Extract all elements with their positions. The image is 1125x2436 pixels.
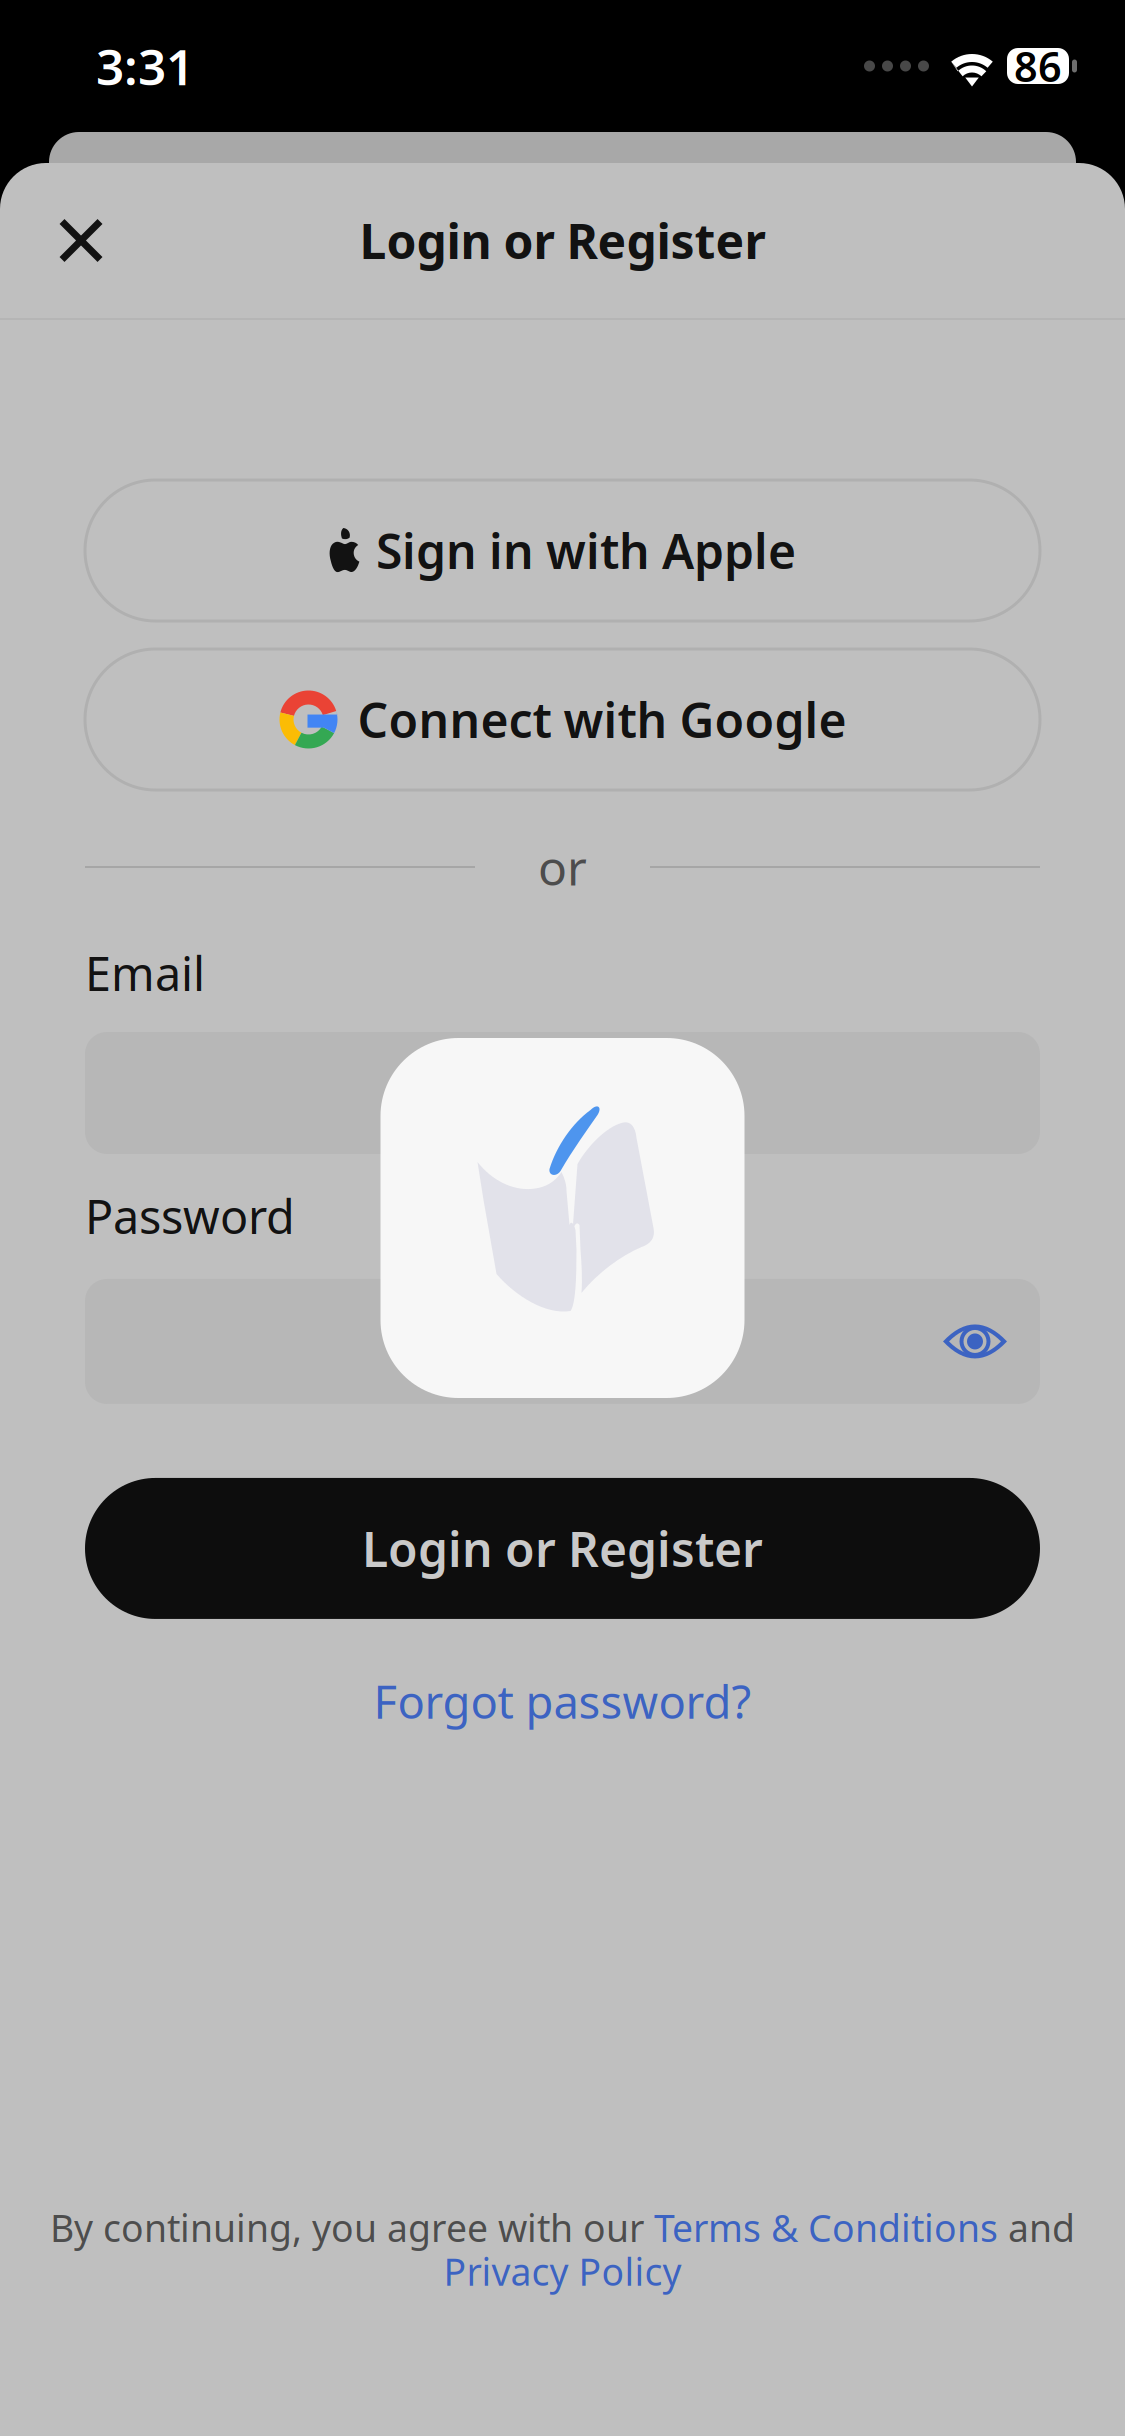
staticText: Login or Register: [359, 209, 765, 272]
staticText: 86: [1014, 39, 1062, 93]
staticText: or: [538, 835, 587, 899]
staticText: Forgot password?: [373, 1671, 751, 1731]
button[interactable]: Connect with Google: [85, 649, 1040, 790]
button[interactable]: Show password: [924, 1304, 1026, 1378]
staticText: Privacy Policy: [443, 2246, 681, 2296]
button[interactable]: Forgot password?: [85, 1671, 1040, 1731]
button[interactable]: Close: [43, 202, 119, 278]
staticText: and: [998, 2203, 1075, 2252]
staticText: Sign in with Apple: [376, 519, 796, 582]
staticText: Email: [85, 942, 205, 1004]
staticText: Terms & Conditions: [654, 2203, 998, 2252]
staticText: By continuing, you agree with our: [50, 2203, 654, 2252]
button[interactable]: Privacy Policy: [443, 2246, 681, 2296]
button[interactable]: Login or Register: [85, 1478, 1040, 1619]
staticText: Login or Register: [362, 1517, 763, 1580]
staticText: Password: [85, 1185, 295, 1247]
button[interactable]: Terms & Conditions: [654, 2203, 998, 2252]
staticText: 3:31: [96, 33, 194, 99]
staticText: Connect with Google: [357, 688, 846, 751]
button[interactable]: Sign in with Apple: [85, 480, 1040, 621]
